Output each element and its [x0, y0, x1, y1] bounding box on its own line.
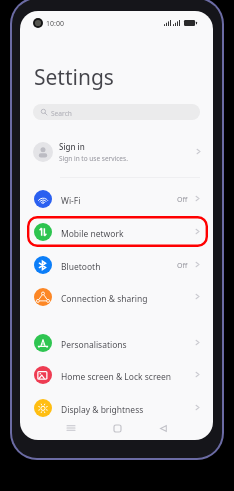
button[interactable]: Mobile network: [20, 215, 213, 248]
button[interactable]: Bluetooth: [20, 248, 213, 281]
staticText: Display & brightness: [61, 404, 144, 416]
button[interactable]: Recents: [56, 416, 86, 440]
staticText: Sign in: [59, 141, 85, 152]
button[interactable]: Connection & sharing: [20, 280, 213, 313]
staticText: Search: [51, 109, 72, 118]
staticText: Mobile network: [61, 228, 124, 240]
button[interactable]: Display & brightness: [20, 391, 213, 424]
staticText: Settings: [34, 63, 114, 92]
staticText: Bluetooth: [61, 261, 101, 273]
staticText: Sign in to use services.: [59, 154, 128, 163]
button[interactable]: Home screen & Lock screen: [20, 358, 213, 391]
staticText: Connection & sharing: [61, 293, 148, 305]
button[interactable]: Search: [33, 104, 200, 120]
button[interactable]: Home: [102, 416, 132, 440]
staticText: Wi-Fi: [61, 195, 81, 207]
button[interactable]: Wi-Fi: [20, 182, 213, 215]
button[interactable]: Personalisations: [20, 326, 213, 359]
staticText: Off: [177, 195, 188, 205]
staticText: Personalisations: [61, 339, 127, 351]
staticText: 10:00: [46, 19, 64, 29]
button[interactable]: Sign in: [20, 134, 213, 169]
staticText: Home screen & Lock screen: [61, 371, 172, 383]
staticText: Off: [177, 261, 188, 271]
button[interactable]: Back: [148, 416, 178, 440]
